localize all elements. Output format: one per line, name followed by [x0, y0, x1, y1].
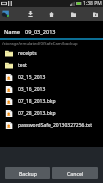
button[interactable]: passwordSafe_20130327256.txt	[0, 119, 103, 131]
button[interactable]: receipts	[0, 47, 103, 59]
button[interactable]: Cancel	[52, 167, 98, 179]
staticText: Name	[4, 28, 21, 36]
button[interactable]: 02_15_2013	[0, 71, 103, 83]
staticText: 07_28_2013.bkp	[18, 110, 56, 117]
staticText: 02_15_2013	[18, 74, 46, 81]
staticText: 09_03_2013	[25, 28, 56, 36]
button[interactable]: test	[0, 59, 103, 71]
button[interactable]: Backup	[5, 167, 50, 179]
button[interactable]: Home	[46, 7, 57, 21]
staticText: 1:38 PM	[83, 0, 102, 7]
staticText: test	[18, 62, 27, 69]
staticText: 03_16_2013	[18, 86, 46, 93]
staticText: /storage/emulated/0/SafeCam/backup	[2, 41, 78, 47]
staticText: 07_18_2013.bkp	[18, 98, 56, 105]
staticText: passwordSafe_20130327256.txt	[18, 122, 93, 129]
staticText: receipts	[18, 50, 37, 57]
button[interactable]: 07_18_2013.bkp	[0, 95, 103, 107]
staticText: Backup	[19, 170, 37, 177]
button[interactable]: Download	[25, 7, 36, 21]
button[interactable]: Open folder	[90, 7, 101, 21]
button[interactable]: App	[1, 10, 9, 18]
staticText: Cancel	[67, 170, 84, 177]
button[interactable]: New folder	[68, 7, 79, 21]
button[interactable]: 07_28_2013.bkp	[0, 107, 103, 119]
button[interactable]: 03_16_2013	[0, 83, 103, 95]
